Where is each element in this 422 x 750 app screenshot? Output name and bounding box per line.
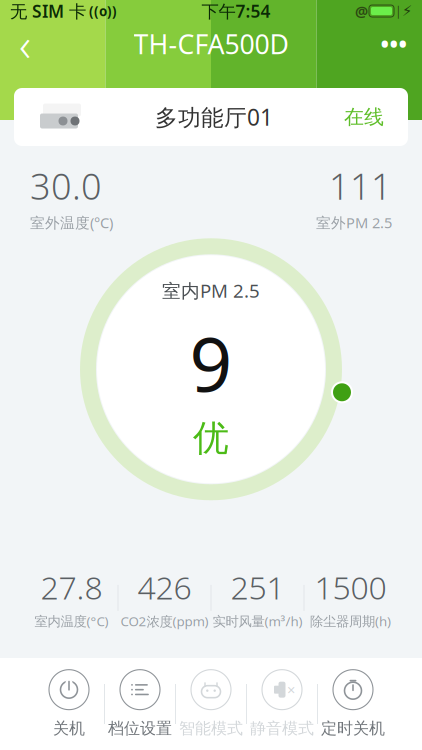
staticText: 档位设置 (108, 719, 172, 738)
staticText: 室外温度(°C) (30, 213, 113, 232)
staticText: CO2浓度(ppm) (120, 612, 208, 630)
button[interactable]: × (247, 665, 317, 743)
button[interactable]: 定时关机 (318, 665, 388, 743)
button[interactable]: 多功能厅01 (14, 88, 408, 146)
staticText: TH-CFA500D (133, 26, 288, 62)
staticText: 下午7:54 (201, 0, 270, 22)
staticText: @ (355, 1, 368, 21)
button[interactable]: 档位设置 (105, 665, 175, 743)
staticText: 无 SIM 卡 (10, 0, 86, 22)
staticText: 1500 (314, 566, 386, 608)
staticText: ⚡︎ (402, 3, 412, 19)
staticText: 30.0 (30, 162, 102, 210)
staticText: 除尘器周期(h) (310, 612, 391, 630)
staticText: 室外PM 2.5 (316, 213, 392, 232)
staticText: 多功能厅01 (155, 102, 273, 132)
staticText: 111 (329, 162, 392, 210)
staticText: × (287, 680, 295, 699)
staticText: 251 (230, 566, 284, 608)
button[interactable]: More options (366, 22, 422, 66)
staticText: 在线 (344, 105, 384, 129)
staticText: 静音模式 (250, 719, 314, 738)
staticText: 智能模式 (179, 719, 243, 738)
staticText: 室内温度(°C) (34, 612, 108, 630)
staticText: ((o)) (86, 2, 117, 20)
staticText: 426 (137, 566, 191, 608)
button[interactable]: Back (0, 22, 50, 66)
button[interactable]: 智能模式 (176, 665, 246, 743)
staticText: 定时关机 (321, 719, 385, 738)
staticText: 优 (193, 416, 229, 460)
staticText: 9 (189, 313, 232, 412)
staticText: ‹ (19, 14, 31, 74)
staticText: 室内PM 2.5 (162, 278, 260, 303)
staticText: 关机 (53, 719, 85, 738)
staticText: | (395, 3, 402, 19)
staticText: 27.8 (40, 566, 102, 608)
button[interactable]: 关机 (34, 665, 104, 743)
staticText: 实时风量(m³/h) (212, 612, 302, 630)
staticText: ••• (380, 29, 407, 59)
